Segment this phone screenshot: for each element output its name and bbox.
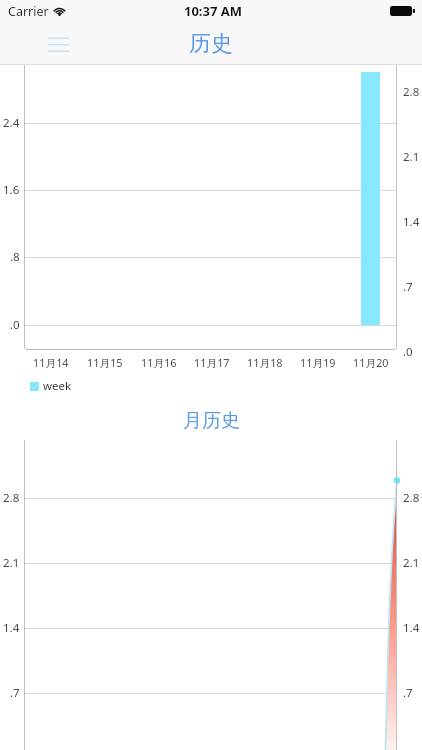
staticText: .7: [403, 279, 413, 295]
button[interactable]: week: [30, 378, 72, 394]
staticText: 2.8: [403, 490, 420, 506]
staticText: week: [43, 378, 72, 394]
staticText: 11月17: [194, 355, 230, 370]
staticText: .0: [10, 317, 20, 333]
staticText: Carrier: [8, 3, 49, 20]
staticText: 11月16: [141, 355, 177, 370]
staticText: 月历史: [183, 409, 240, 433]
button[interactable]: Menu: [40, 28, 76, 60]
staticText: 2.8: [3, 490, 20, 506]
staticText: 2.1: [3, 555, 20, 571]
staticText: .7: [10, 685, 20, 701]
staticText: 11月19: [300, 355, 336, 370]
staticText: .7: [403, 685, 413, 701]
staticText: 2.1: [403, 149, 420, 165]
staticText: 11月15: [87, 355, 123, 370]
staticText: 历史: [189, 30, 233, 58]
staticText: 11月18: [247, 355, 283, 370]
staticText: 11月14: [33, 355, 69, 370]
staticText: 1.4: [403, 214, 420, 230]
staticText: .0: [403, 344, 413, 360]
staticText: 11月20: [353, 355, 389, 370]
staticText: 10:37 AM: [184, 2, 243, 20]
staticText: 1.4: [403, 620, 420, 636]
staticText: 2.1: [403, 555, 420, 571]
staticText: 1.4: [3, 620, 20, 636]
staticText: 2.4: [3, 115, 20, 131]
staticText: 2.8: [403, 84, 420, 100]
staticText: 1.6: [3, 182, 20, 198]
staticText: .8: [10, 249, 20, 265]
